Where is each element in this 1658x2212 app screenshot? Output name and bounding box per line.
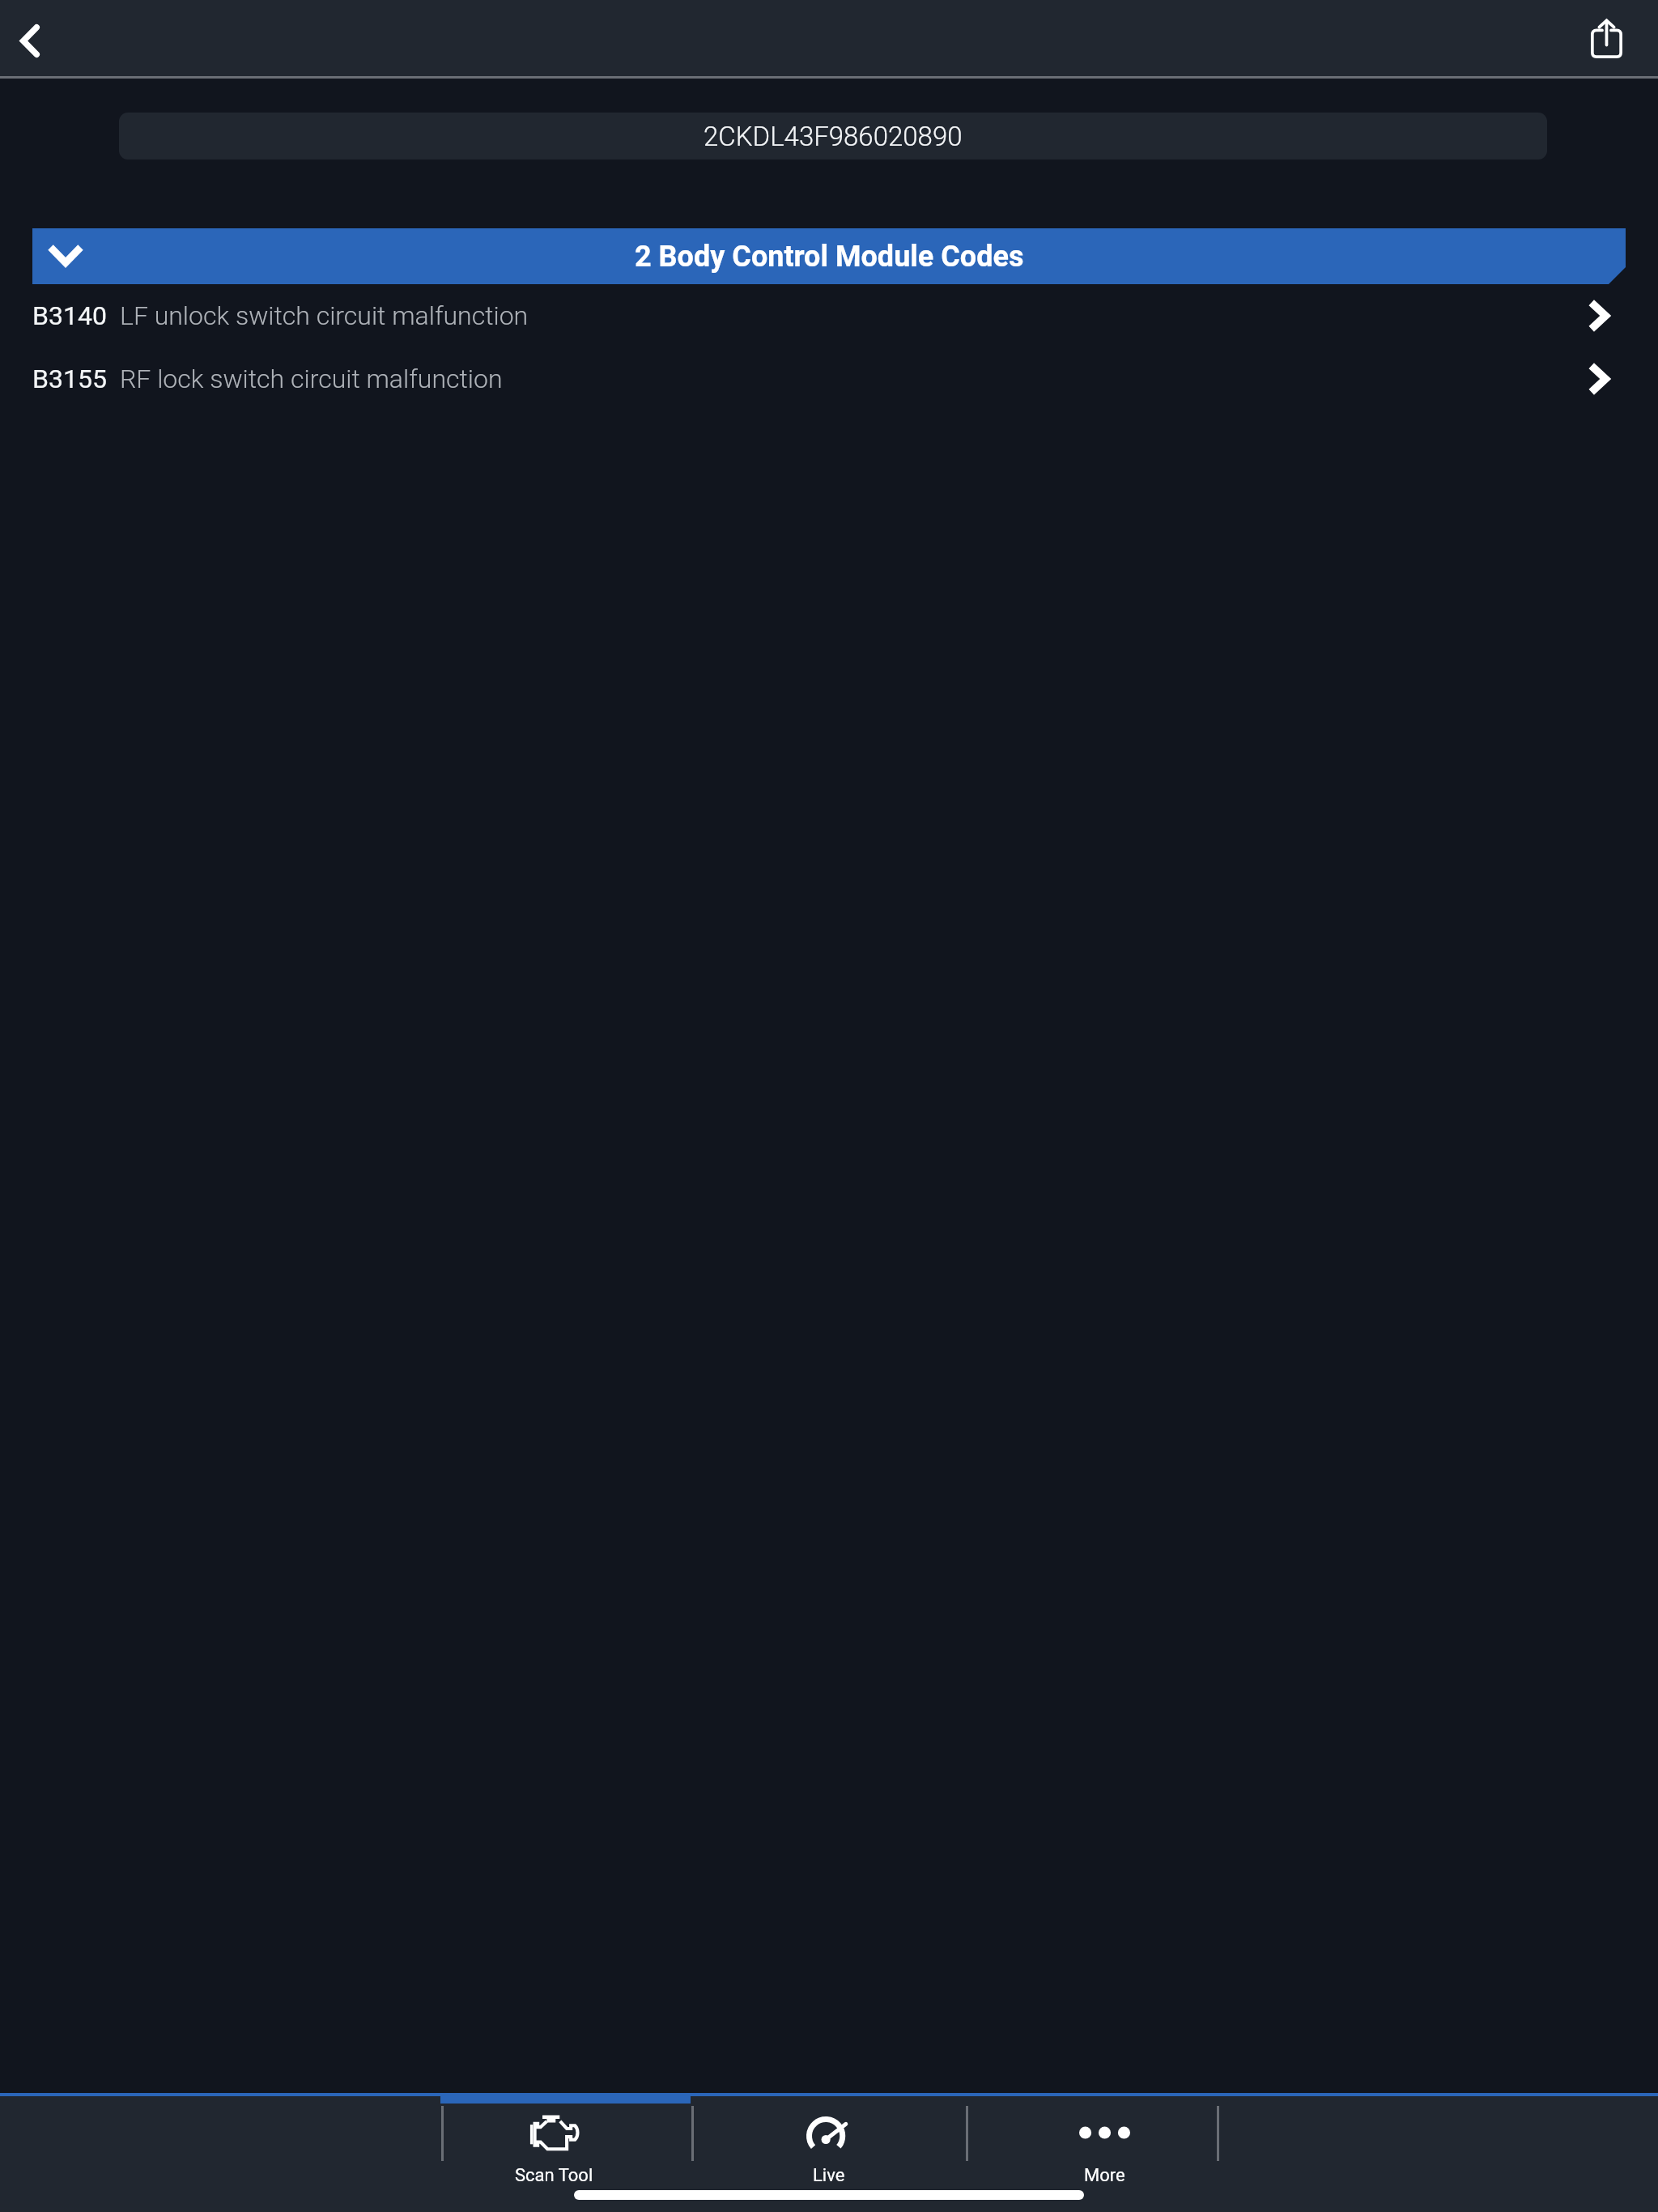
- button[interactable]: Live: [691, 2096, 967, 2212]
- staticText: B3140: [32, 300, 107, 331]
- button[interactable]: B3155: [0, 347, 1658, 410]
- staticText: Live: [813, 2165, 845, 2186]
- button[interactable]: [32, 228, 1626, 284]
- staticText: RF lock switch circuit malfunction: [120, 364, 503, 394]
- button[interactable]: 2CKDL43F986020890: [119, 113, 1547, 160]
- button[interactable]: Scan Tool: [416, 2096, 691, 2212]
- staticText: B3155: [32, 364, 107, 394]
- button[interactable]: Back: [0, 0, 79, 79]
- staticText: 2CKDL43F986020890: [704, 121, 963, 152]
- button[interactable]: Share: [1574, 0, 1658, 79]
- button[interactable]: More: [967, 2096, 1242, 2212]
- staticText: Scan Tool: [515, 2165, 593, 2186]
- staticText: 2 Body Control Module Codes: [635, 240, 1024, 274]
- staticText: More: [1084, 2165, 1125, 2186]
- button[interactable]: B3140: [0, 284, 1658, 347]
- staticText: LF unlock switch circuit malfunction: [120, 300, 529, 331]
